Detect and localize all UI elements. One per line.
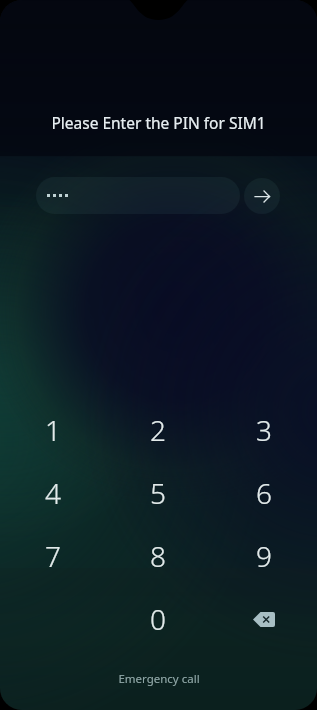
button[interactable]: 3	[211, 404, 317, 456]
staticText: 3	[256, 411, 272, 449]
staticText: 8	[150, 537, 166, 575]
staticText: 9	[256, 537, 272, 575]
button[interactable]: 1	[0, 404, 105, 456]
staticText: Emergency call	[118, 671, 200, 687]
button[interactable]: 8	[105, 530, 211, 582]
staticText: 0	[150, 600, 166, 638]
staticText: Please Enter the PIN for SIM1	[0, 112, 317, 133]
button[interactable]: 4	[0, 467, 105, 519]
staticText: 2	[150, 411, 166, 449]
button[interactable]	[36, 177, 240, 214]
staticText: 4	[45, 474, 61, 512]
button[interactable]: Submit PIN	[244, 178, 280, 214]
staticText: 7	[45, 537, 61, 575]
button[interactable]: 0	[105, 593, 211, 645]
staticText: 5	[150, 474, 166, 512]
button[interactable]: Emergency call	[104, 668, 214, 690]
staticText: 1	[45, 411, 61, 449]
button[interactable]: 6	[211, 467, 317, 519]
staticText: 6	[256, 474, 272, 512]
button[interactable]: Backspace	[211, 593, 317, 645]
button[interactable]: 7	[0, 530, 105, 582]
button[interactable]: 5	[105, 467, 211, 519]
button[interactable]: 2	[105, 404, 211, 456]
button[interactable]: 9	[211, 530, 317, 582]
